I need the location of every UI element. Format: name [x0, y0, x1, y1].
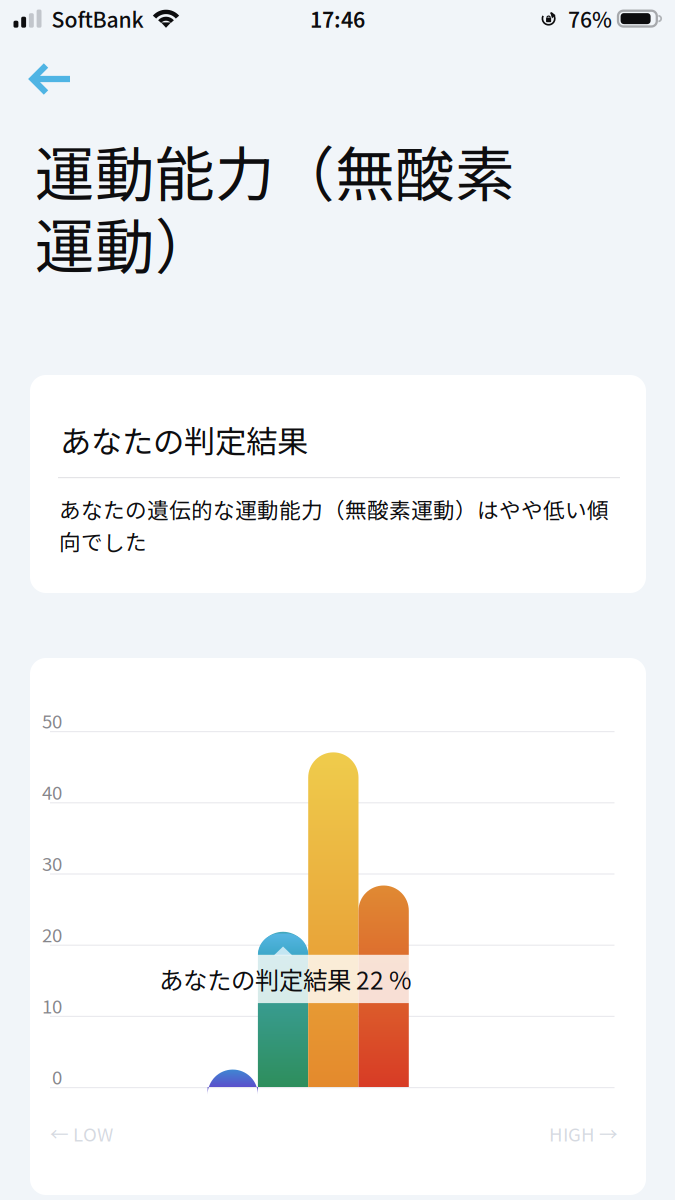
staticText: 17:46 — [310, 3, 365, 34]
staticText: あなたの判定結果 — [60, 417, 308, 462]
staticText: 20 — [42, 921, 62, 947]
staticText: 0 — [52, 1063, 62, 1090]
staticText: ← LOW — [50, 1120, 113, 1147]
staticText: 76% — [568, 3, 612, 34]
staticText: 10 — [42, 992, 62, 1019]
staticText: HIGH → — [549, 1120, 618, 1147]
staticText: 30 — [42, 849, 62, 876]
staticText: あなたの遺伝的な運動能力（無酸素運動）はやや低い傾向でした — [59, 493, 609, 557]
staticText: SoftBank — [51, 3, 143, 34]
staticText: 40 — [42, 778, 62, 805]
staticText: 50 — [42, 707, 62, 734]
staticText: 運動能力（無酸素運動） — [35, 134, 515, 279]
button[interactable]: Back — [8, 50, 94, 108]
staticText: あなたの判定結果 22 % — [159, 961, 411, 997]
